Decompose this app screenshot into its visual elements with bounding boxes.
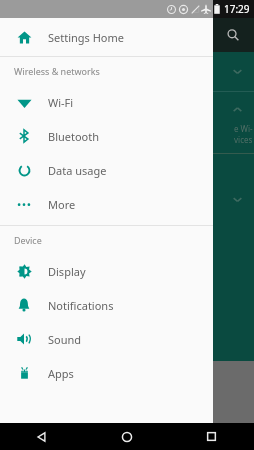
staticText: Device xyxy=(14,234,42,246)
staticText: 17:29 xyxy=(224,2,250,16)
staticText: More xyxy=(48,197,76,212)
button[interactable]: Display xyxy=(0,254,213,288)
button[interactable]: Settings Home xyxy=(0,18,213,56)
staticText: Display xyxy=(48,264,86,279)
staticText: Notifications xyxy=(48,298,114,313)
button[interactable]: Data usage xyxy=(0,153,213,187)
staticText: e Wi- vices xyxy=(234,123,253,145)
staticText: Wi-Fi xyxy=(48,95,74,110)
button[interactable]: Back xyxy=(0,423,84,450)
button[interactable]: Search xyxy=(222,24,244,46)
button[interactable]: Notifications xyxy=(0,288,213,322)
button[interactable]: Bluetooth xyxy=(0,119,213,153)
staticText: Sound xyxy=(48,332,82,347)
staticText: Wireless & networks xyxy=(14,65,100,77)
button[interactable]: Sound xyxy=(0,322,213,356)
button[interactable]: Recents xyxy=(169,423,254,450)
staticText: Apps xyxy=(48,366,74,381)
button[interactable]: More xyxy=(0,187,213,221)
button[interactable]: Home xyxy=(84,423,169,450)
staticText: Data usage xyxy=(48,163,107,178)
button[interactable]: Apps xyxy=(0,356,213,390)
staticText: Bluetooth xyxy=(48,129,100,144)
button[interactable]: Wi-Fi xyxy=(0,85,213,119)
staticText: Settings Home xyxy=(48,30,125,45)
